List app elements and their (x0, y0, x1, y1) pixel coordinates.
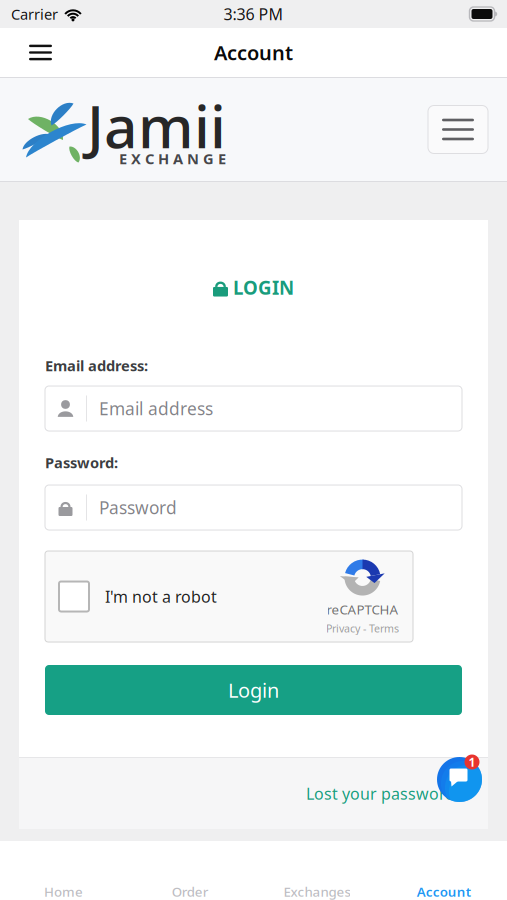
staticText: Order (172, 883, 209, 900)
button[interactable]: Login (45, 665, 462, 715)
staticText: Account (214, 39, 293, 66)
staticText: Email address: (45, 356, 148, 375)
staticText: E X C H A N G E (119, 149, 226, 168)
staticText: Privacy - Terms (326, 621, 399, 635)
staticText: LOGIN (233, 275, 294, 300)
staticText: Email address (99, 397, 213, 420)
button[interactable]: Open site menu (428, 105, 488, 153)
staticText: Password: (45, 453, 118, 472)
button[interactable]: Menu (0, 37, 68, 68)
staticText: Carrier (11, 4, 58, 24)
button[interactable]: Exchanges (253, 841, 380, 900)
staticText: Jamii (87, 86, 226, 164)
staticText: Password (99, 496, 177, 519)
staticText: Lost your password? (306, 783, 462, 804)
staticText: Account (417, 883, 471, 900)
button[interactable]: Order (127, 841, 254, 900)
staticText: Exchanges (283, 883, 350, 900)
button[interactable]: Account (380, 841, 507, 900)
staticText: Login (228, 677, 279, 703)
staticText: 3:36 PM (223, 3, 283, 25)
staticText: Home (44, 883, 83, 900)
button[interactable]: Home (0, 841, 127, 900)
staticText: 1 (468, 754, 475, 770)
button[interactable]: Lost your password? (306, 783, 462, 804)
staticText: reCAPTCHA (326, 601, 398, 618)
button[interactable]: Chat support (437, 742, 493, 802)
staticText: I'm not a robot (105, 586, 217, 607)
